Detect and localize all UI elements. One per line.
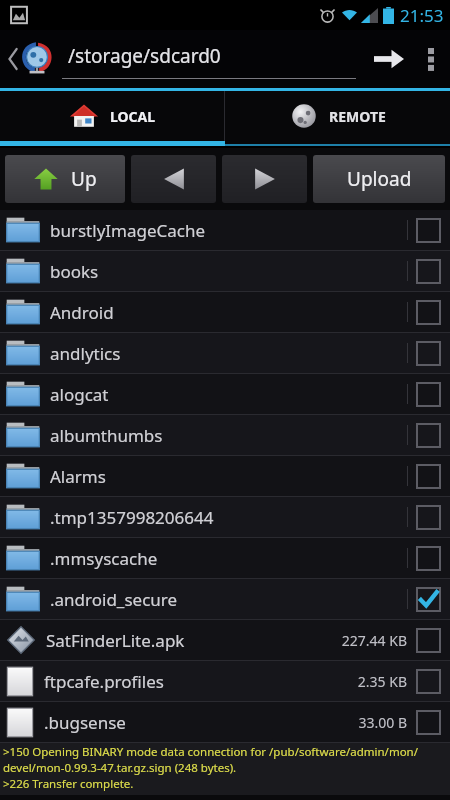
staticText: books [50, 260, 407, 283]
button[interactable] [222, 155, 307, 203]
staticText: REMOTE [329, 107, 386, 126]
button[interactable]: Not selected [417, 260, 440, 283]
button[interactable]: Go [366, 36, 412, 82]
button[interactable] [131, 155, 216, 203]
button[interactable]: Up [5, 155, 125, 203]
button[interactable]: Alarms [0, 456, 450, 496]
staticText: Upload [347, 166, 412, 192]
button[interactable]: alogcat [0, 374, 450, 414]
button[interactable]: .mmsyscache [0, 538, 450, 578]
button[interactable]: More options [412, 30, 450, 88]
button[interactable]: Selected [417, 588, 440, 611]
button[interactable]: Not selected [417, 424, 440, 447]
staticText: >150 Opening BINARY mode data connection… [3, 744, 418, 760]
staticText: 21:53 [400, 4, 444, 27]
button[interactable]: SatFinderLite.apk [0, 620, 450, 660]
button[interactable]: ftpcafe.profiles [0, 661, 450, 701]
button[interactable]: LOCAL [0, 91, 224, 141]
staticText: .mmsyscache [50, 547, 407, 570]
staticText: SatFinderLite.apk [46, 629, 341, 652]
staticText: andlytics [50, 342, 407, 365]
button[interactable]: .bugsense [0, 702, 450, 742]
button[interactable]: .tmp1357998206644 [0, 497, 450, 537]
staticText: Up [71, 166, 97, 192]
button[interactable]: Not selected [417, 465, 440, 488]
button[interactable]: Not selected [417, 506, 440, 529]
staticText: LOCAL [110, 107, 156, 126]
staticText: ftpcafe.profiles [44, 670, 357, 693]
button[interactable]: /storage/sdcard0 [62, 39, 356, 79]
staticText: burstlyImageCache [50, 219, 407, 242]
staticText: Android [50, 301, 407, 324]
button[interactable]: albumthumbs [0, 415, 450, 455]
staticText: albumthumbs [50, 424, 407, 447]
button[interactable]: Not selected [417, 547, 440, 570]
staticText: alogcat [50, 383, 407, 406]
button[interactable]: andlytics [0, 333, 450, 373]
button[interactable]: Not selected [417, 629, 440, 652]
staticText: /storage/sdcard0 [68, 43, 221, 69]
button[interactable]: REMOTE [225, 91, 450, 141]
staticText: 33.00 B [358, 713, 407, 732]
button[interactable]: Not selected [417, 342, 440, 365]
button[interactable]: Not selected [417, 301, 440, 324]
staticText: >226 Transfer complete. [3, 776, 134, 792]
button[interactable]: books [0, 251, 450, 291]
button[interactable]: Not selected [417, 670, 440, 693]
button[interactable]: Upload [313, 155, 445, 203]
staticText: 227.44 KB [341, 631, 407, 650]
button[interactable]: .android_secure [0, 579, 450, 619]
staticText: devel/mon-0.99.3-47.tar.gz.sign (248 byt… [3, 760, 237, 776]
button[interactable]: Not selected [417, 711, 440, 734]
staticText: .tmp1357998206644 [50, 506, 407, 529]
button[interactable]: Not selected [417, 219, 440, 242]
button[interactable]: Not selected [417, 383, 440, 406]
staticText: 2.35 KB [357, 672, 407, 691]
staticText: .android_secure [50, 588, 407, 611]
staticText: .bugsense [44, 711, 358, 734]
staticText: Alarms [50, 465, 407, 488]
button[interactable]: burstlyImageCache [0, 210, 450, 250]
button[interactable]: Up one level [0, 30, 62, 88]
button[interactable]: Android [0, 292, 450, 332]
